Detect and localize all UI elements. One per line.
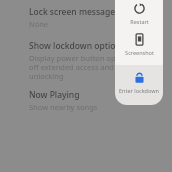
staticText: Enter lockdown <box>119 87 159 94</box>
staticText: Now Playing <box>29 89 80 101</box>
staticText: Lock screen message <box>29 6 116 18</box>
button[interactable]: Restart <box>115 0 163 27</box>
staticText: Screenshot <box>125 49 154 56</box>
button[interactable]: Enter lockdown <box>115 69 163 96</box>
staticText: Show lockdown option <box>29 40 121 52</box>
button[interactable]: Screenshot <box>115 31 163 58</box>
staticText: Restart <box>130 18 149 25</box>
staticText: None <box>29 19 49 29</box>
staticText: Display power button option that off ext… <box>29 53 146 81</box>
staticText: Show nearby songs <box>29 102 98 112</box>
